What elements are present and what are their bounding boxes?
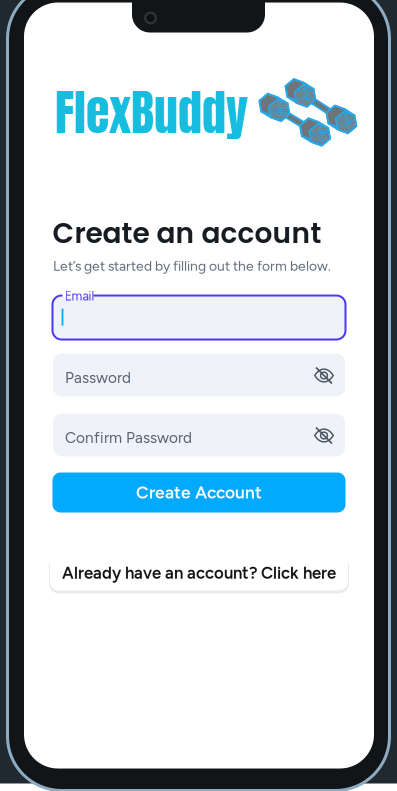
staticText: Create an account bbox=[52, 213, 321, 253]
button[interactable]: Already have an account? Click here bbox=[50, 555, 348, 590]
button[interactable]: Confirm Password bbox=[53, 413, 345, 456]
staticText: Create Account bbox=[136, 482, 262, 503]
staticText: Let’s get started by filling out the for… bbox=[53, 257, 331, 274]
button[interactable]: Password bbox=[53, 353, 345, 396]
staticText: Confirm Password bbox=[65, 428, 192, 447]
staticText: Already have an account? Click here bbox=[62, 563, 336, 583]
button[interactable]: Email bbox=[52, 295, 345, 339]
button[interactable]: Create Account bbox=[52, 472, 345, 512]
staticText: Email bbox=[64, 288, 94, 304]
staticText: FlexBuddy bbox=[55, 76, 248, 149]
staticText: Password bbox=[65, 368, 131, 387]
